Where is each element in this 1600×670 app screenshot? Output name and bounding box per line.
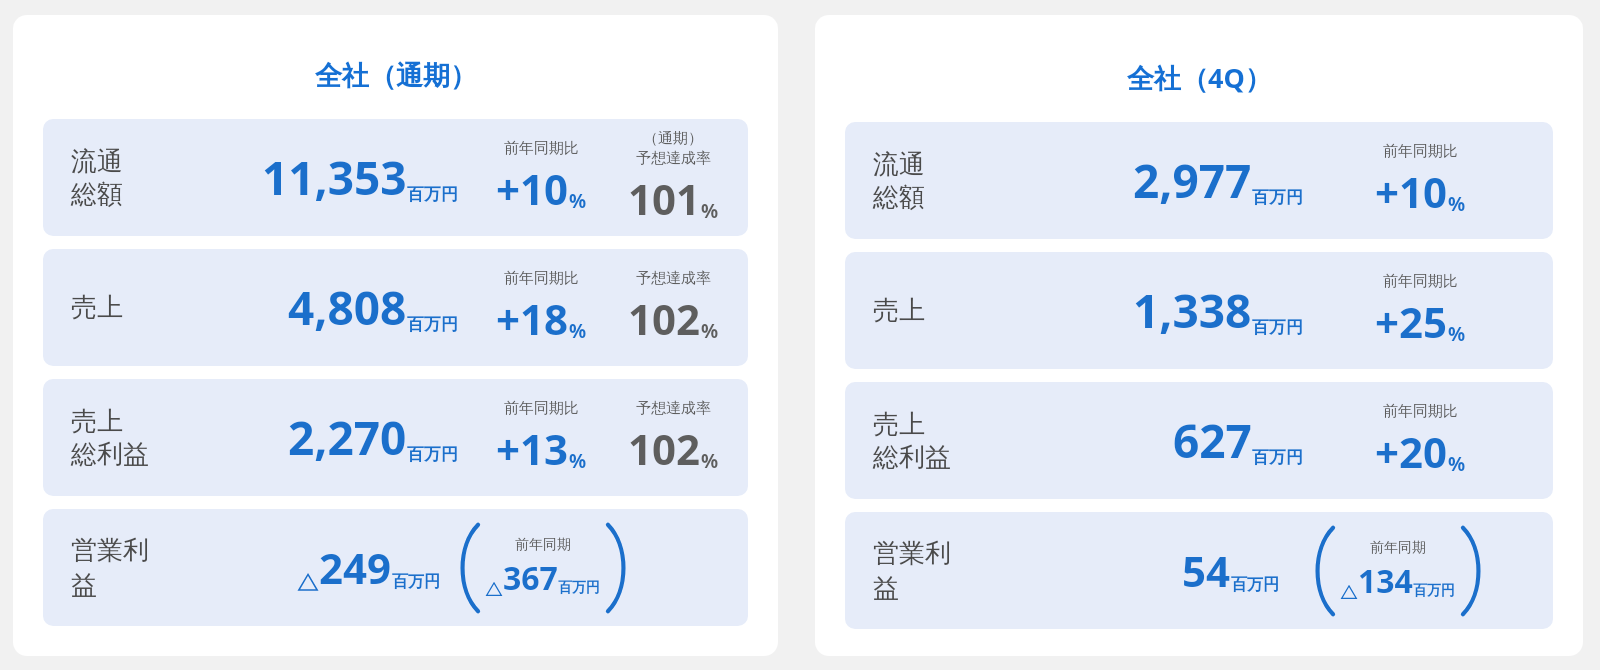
staticText: +13 [496,420,569,477]
staticText: 627 [1173,409,1252,472]
button[interactable]: 営業利益 [845,512,1553,629]
staticText: % [569,188,587,214]
staticText: 総額 [71,178,123,211]
button[interactable]: 流通 [845,122,1553,239]
staticText: +20 [1375,423,1448,480]
staticText: 売上 [873,408,925,441]
staticText: 予想達成率 [636,399,711,418]
staticText: 百万円 [1252,447,1303,468]
staticText: （通期） [643,129,703,148]
staticText: 百万円 [392,572,440,592]
staticText: 11,353 [262,146,407,209]
staticText: 百万円 [1252,317,1303,338]
staticText: % [701,318,719,344]
button[interactable]: 流通 [43,119,748,236]
staticText: +10 [1375,163,1448,220]
staticText: 4,808 [288,276,407,339]
staticText: 総額 [873,181,925,214]
staticText: % [701,198,719,224]
staticText: % [1448,321,1466,347]
staticText: 百万円 [407,314,458,335]
button[interactable]: 営業利益 [43,509,748,626]
staticText: 営業利益 [71,534,163,602]
staticText: 前年同期比 [1383,272,1458,291]
staticText: 101 [628,170,701,227]
staticText: 百万円 [407,444,458,465]
staticText: 営業利益 [873,537,965,605]
staticText: 2,977 [1133,149,1252,212]
staticText: 367 [503,556,558,600]
staticText: 2,270 [288,406,407,469]
staticText: +10 [496,160,569,217]
staticText: 百万円 [1413,582,1455,600]
staticText: 54 [1182,542,1231,599]
staticText: 全社（通期） [315,59,477,93]
staticText: +25 [1375,293,1448,350]
staticText: 前年同期比 [504,399,579,418]
staticText: 102 [628,290,701,347]
staticText: 予想達成率 [636,269,711,288]
staticText: 前年同期比 [1383,402,1458,421]
button[interactable]: 売上 [845,382,1553,499]
staticText: % [569,318,587,344]
staticText: 前年同期比 [504,139,579,158]
staticText: 全社（4Q） [1127,59,1272,96]
staticText: 流通 [873,148,925,181]
staticText: % [569,448,587,474]
staticText: 流通 [71,145,123,178]
staticText: 前年同期比 [504,269,579,288]
staticText: % [1448,451,1466,477]
staticText: 249 [319,539,392,596]
staticText: 売上 [71,291,123,324]
staticText: 1,338 [1133,279,1252,342]
staticText: % [701,448,719,474]
staticText: 102 [628,420,701,477]
staticText: 売上 [71,405,123,438]
button[interactable]: 売上 [43,379,748,496]
staticText: 百万円 [1231,575,1279,595]
staticText: 前年同期 [515,536,571,554]
staticText: 百万円 [558,579,600,597]
staticText: 134 [1358,559,1413,603]
staticText: 百万円 [1252,187,1303,208]
staticText: 前年同期比 [1383,142,1458,161]
staticText: 売上 [873,294,925,327]
staticText: 予想達成率 [636,149,711,168]
staticText: 前年同期 [1370,539,1426,557]
button[interactable]: 売上 [845,252,1553,369]
staticText: +18 [496,290,569,347]
staticText: 百万円 [407,184,458,205]
staticText: 総利益 [71,438,149,471]
button[interactable]: 売上 [43,249,748,366]
staticText: 総利益 [873,441,951,474]
staticText: % [1448,191,1466,217]
